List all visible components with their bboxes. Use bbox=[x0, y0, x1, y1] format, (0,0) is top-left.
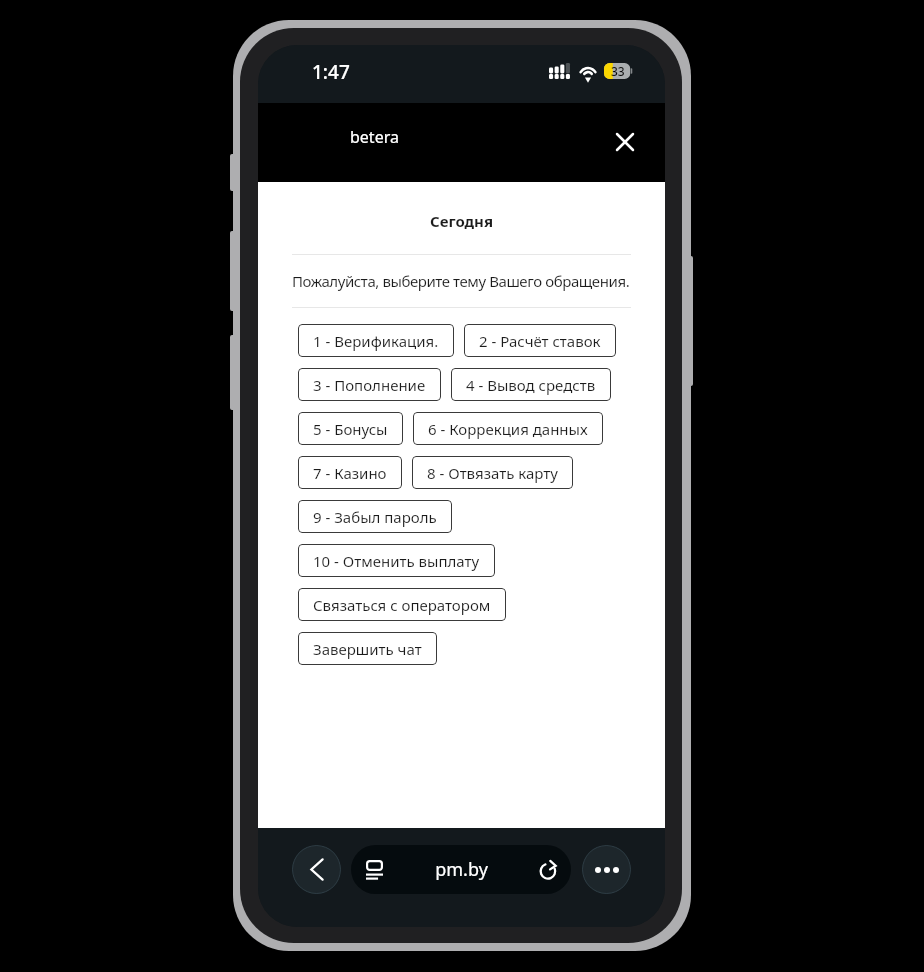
staticText: 8 - Отвязать карту bbox=[427, 463, 558, 483]
staticText: 2 - Расчёт ставок bbox=[479, 331, 601, 351]
staticText: 3 - Пополнение bbox=[313, 375, 426, 395]
button[interactable]: 1 - Верификация. bbox=[298, 324, 454, 357]
staticText: 33 bbox=[611, 63, 625, 79]
staticText: 1:47 bbox=[312, 59, 350, 85]
staticText: 4 - Вывод средств bbox=[466, 375, 596, 395]
staticText: 9 - Забыл пароль bbox=[313, 507, 437, 527]
staticText: Сегодня bbox=[292, 211, 631, 231]
staticText: Завершить чат bbox=[313, 639, 422, 659]
button[interactable]: Back bbox=[292, 845, 341, 894]
button[interactable]: 9 - Забыл пароль bbox=[298, 500, 452, 533]
button[interactable]: More options bbox=[582, 845, 631, 894]
button[interactable]: 4 - Вывод средств bbox=[451, 368, 611, 401]
staticText: 6 - Коррекция данных bbox=[428, 419, 588, 439]
button[interactable]: Reload bbox=[540, 859, 558, 880]
button[interactable]: 3 - Пополнение bbox=[298, 368, 441, 401]
button[interactable]: Завершить чат bbox=[298, 632, 437, 665]
staticText: betera bbox=[350, 126, 399, 148]
button[interactable]: 10 - Отменить выплату bbox=[298, 544, 495, 577]
button[interactable]: 5 - Бонусы bbox=[298, 412, 403, 445]
button[interactable]: Reader view bbox=[366, 860, 383, 880]
button[interactable]: 2 - Расчёт ставок bbox=[464, 324, 616, 357]
button[interactable]: Close bbox=[607, 125, 643, 161]
staticText: 7 - Казино bbox=[313, 463, 387, 483]
button[interactable]: 8 - Отвязать карту bbox=[412, 456, 573, 489]
other: Reload bbox=[540, 859, 558, 880]
button[interactable]: 6 - Коррекция данных bbox=[413, 412, 603, 445]
button[interactable]: Reader view bbox=[351, 845, 571, 894]
staticText: pm.by bbox=[383, 857, 540, 882]
staticText: Пожалуйста, выберите тему Вашего обращен… bbox=[292, 271, 630, 291]
staticText: Связаться с оператором bbox=[313, 595, 491, 615]
other: Reader view bbox=[366, 860, 383, 880]
staticText: 1 - Верификация. bbox=[313, 331, 439, 351]
button[interactable]: 7 - Казино bbox=[298, 456, 402, 489]
staticText: 10 - Отменить выплату bbox=[313, 551, 480, 571]
staticText: 5 - Бонусы bbox=[313, 419, 388, 439]
button[interactable]: Связаться с оператором bbox=[298, 588, 506, 621]
